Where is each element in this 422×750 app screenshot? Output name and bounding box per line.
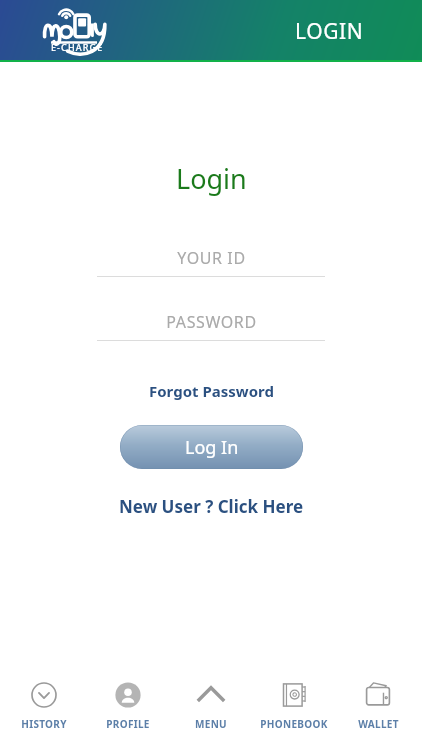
button[interactable]: YOUR ID [97, 245, 325, 277]
button[interactable]: PASSWORD [97, 309, 325, 341]
staticText: LOGIN [295, 17, 364, 46]
button[interactable]: MENU [172, 666, 250, 731]
staticText: PROFILE [106, 717, 150, 731]
staticText: Log In [185, 435, 239, 460]
staticText: PHONEBOOK [260, 717, 328, 731]
button[interactable]: WALLET [339, 666, 417, 731]
other: WALLET [363, 680, 393, 710]
button[interactable]: Forgot Password [141, 378, 282, 404]
other: MENU [196, 680, 226, 710]
staticText: HISTORY [21, 717, 67, 731]
staticText: E-CHARGE [51, 41, 104, 53]
staticText: MENU [195, 717, 227, 731]
other: PROFILE [113, 680, 143, 710]
button[interactable]: Log In [120, 425, 303, 469]
button[interactable]: PHONEBOOK [255, 666, 333, 731]
other: PHONEBOOK [279, 680, 309, 710]
staticText: WALLET [358, 717, 399, 731]
staticText: New User ? Click Here [119, 495, 304, 518]
other: HISTORY [29, 680, 59, 710]
staticText: PASSWORD [166, 311, 257, 333]
staticText: Forgot Password [149, 381, 274, 401]
staticText: Login [176, 160, 247, 197]
button[interactable]: PROFILE [89, 666, 167, 731]
button[interactable]: New User ? Click Here [111, 492, 312, 521]
staticText: YOUR ID [177, 247, 246, 269]
button[interactable]: HISTORY [5, 666, 83, 731]
